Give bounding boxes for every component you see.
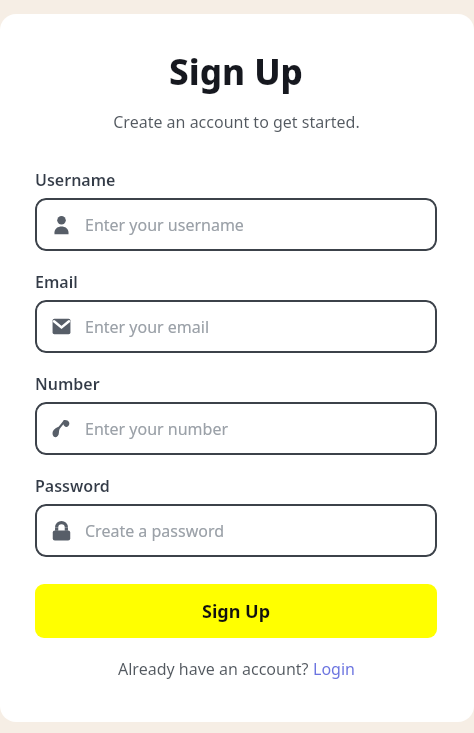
- button[interactable]: Enter your number: [35, 402, 437, 455]
- staticText: Email: [35, 271, 78, 293]
- button[interactable]: Enter your email: [35, 300, 437, 353]
- staticText: Create a password: [85, 520, 225, 542]
- staticText: Enter your email: [85, 316, 210, 338]
- staticText: Enter your number: [85, 418, 229, 440]
- button[interactable]: Enter your username: [35, 198, 437, 251]
- staticText: Number: [35, 373, 100, 395]
- button[interactable]: Sign Up: [35, 584, 437, 638]
- staticText: Password: [35, 475, 110, 497]
- staticText: Login: [313, 658, 355, 680]
- staticText: Sign Up: [169, 48, 303, 96]
- staticText: Username: [35, 169, 116, 191]
- staticText: Create an account to get started.: [113, 111, 360, 133]
- button[interactable]: Create a password: [35, 504, 437, 557]
- button[interactable]: Login: [313, 658, 355, 680]
- staticText: Sign Up: [202, 599, 271, 624]
- staticText: Enter your username: [85, 214, 244, 236]
- staticText: Already have an account?: [118, 658, 313, 680]
